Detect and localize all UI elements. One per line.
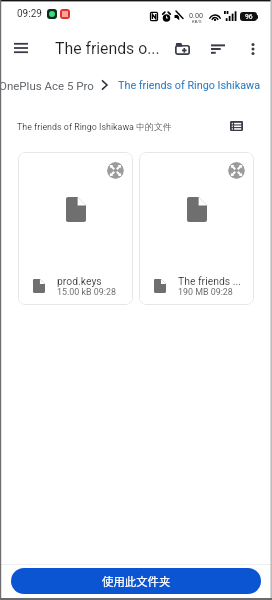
button[interactable]: Select item [107,162,124,179]
button[interactable]: More options [240,36,266,62]
staticText: 09:29 [17,8,42,20]
staticText: 15.00 kB 09:28 [57,287,116,297]
staticText: The friends o... [55,39,160,58]
button[interactable]: Sort [205,36,231,62]
button[interactable]: OnePlus Ace 5 Pro [0,79,94,92]
button[interactable]: 使用此文件夹 [11,568,261,594]
staticText: 190 MB 09:28 [178,287,233,297]
staticText: 使用此文件夹 [102,573,171,590]
button[interactable]: Select item [18,152,133,305]
button[interactable]: Navigation menu [8,35,34,61]
staticText: 0.00 [189,11,204,19]
button[interactable]: Switch to list view [225,115,247,137]
staticText: 96 [245,13,253,21]
staticText: The friends ... [178,275,241,287]
staticText: KB/S [192,19,202,24]
button[interactable]: Create new folder [169,36,195,62]
button[interactable]: Select item [228,162,245,179]
staticText: The friends of Ringo Ishikawa 中的文件 [17,121,172,132]
button[interactable]: The friends of Ringo Ishikawa [118,79,260,92]
staticText: prod.keys [57,275,102,287]
button[interactable]: Select item [139,152,254,305]
